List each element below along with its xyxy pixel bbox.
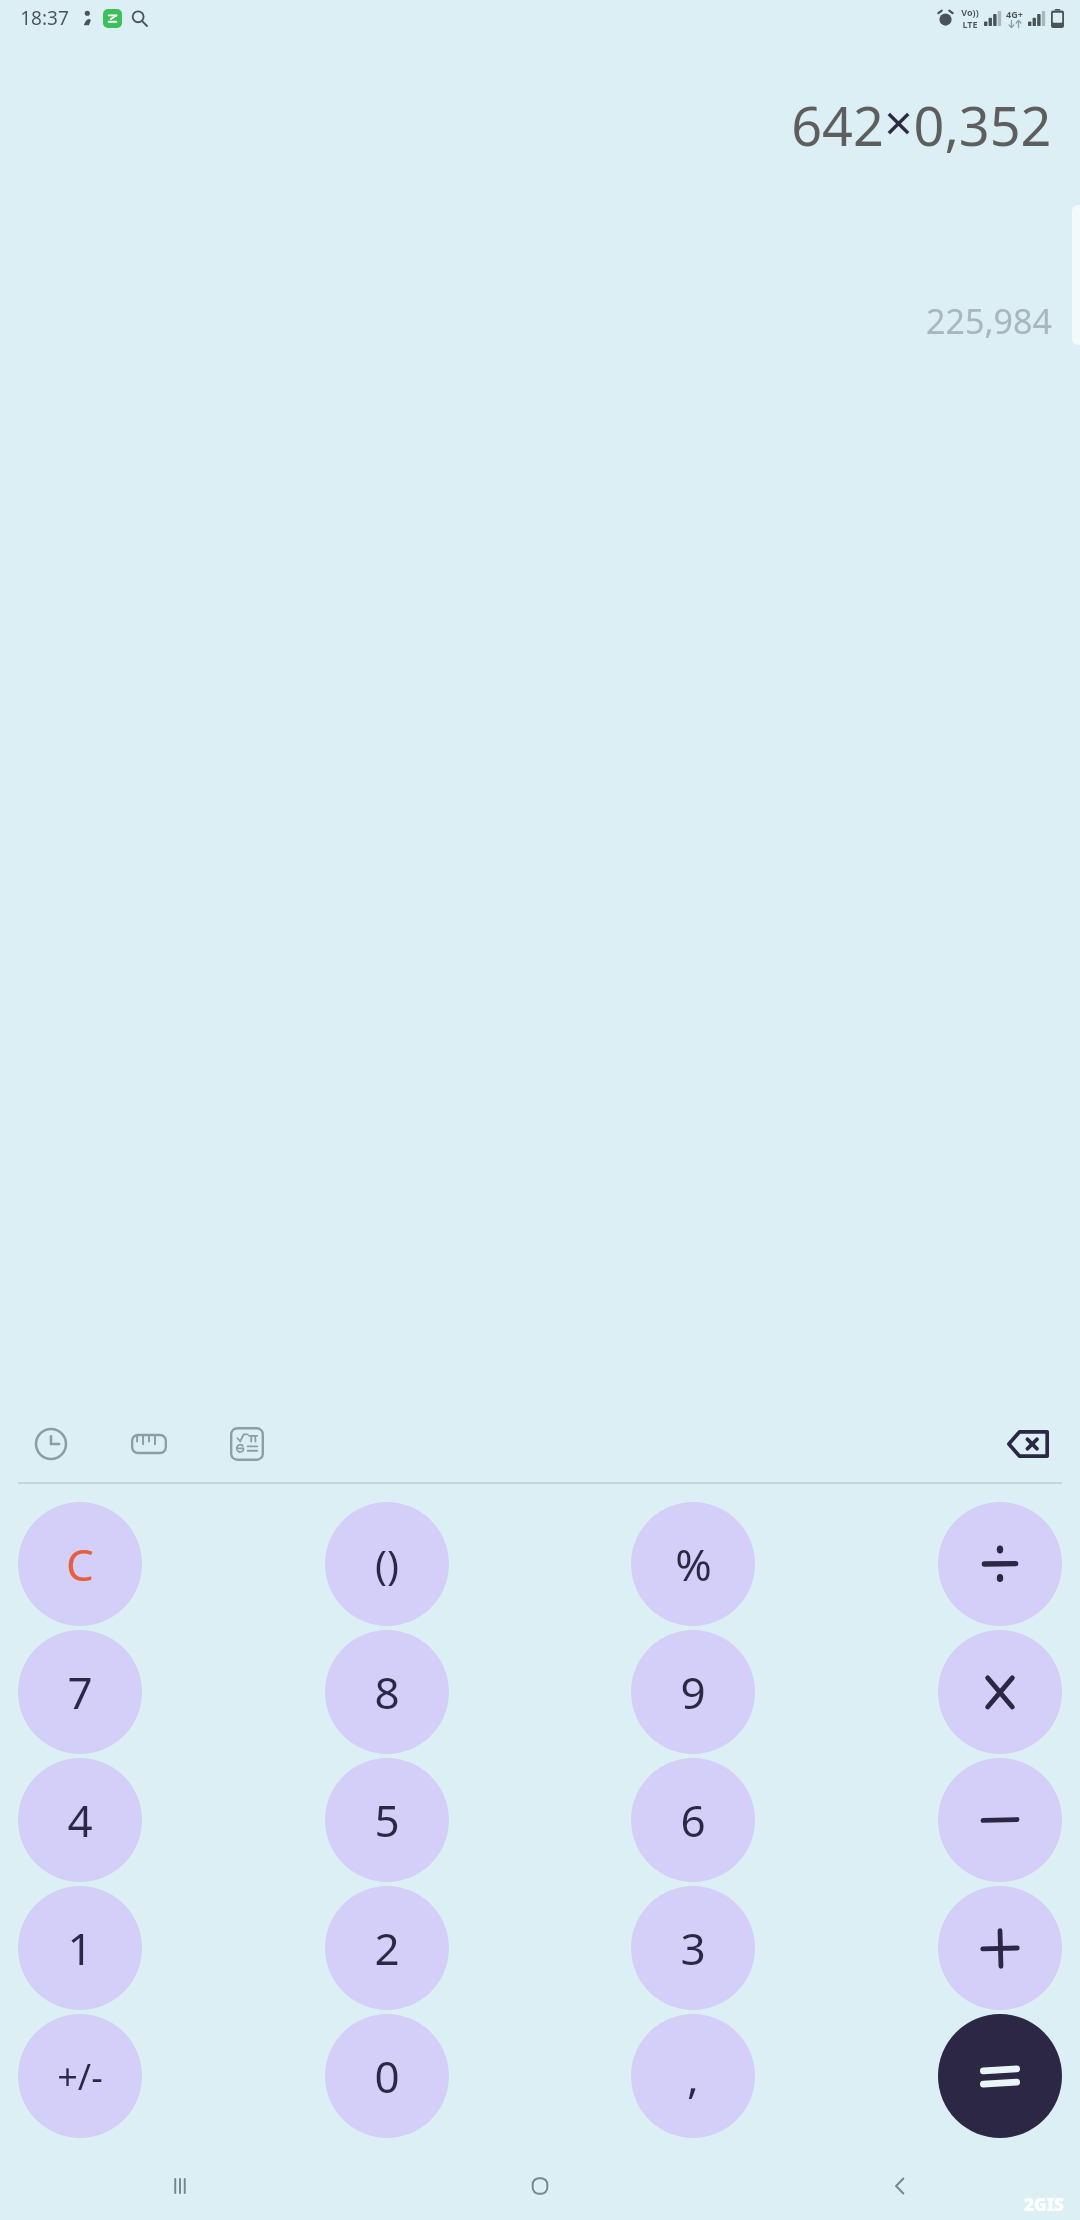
button[interactable]: Back: [720, 2152, 1080, 2220]
staticText: %: [675, 1534, 712, 1594]
staticText: 9: [680, 1662, 706, 1722]
staticText: 1: [67, 1918, 93, 1978]
staticText: 8: [374, 1662, 400, 1722]
button[interactable]: 1: [18, 1886, 142, 2010]
button[interactable]: +/-: [18, 2014, 142, 2138]
button[interactable]: C: [18, 1502, 142, 1626]
button[interactable]: %: [631, 1502, 755, 1626]
button[interactable]: [938, 1502, 1062, 1626]
staticText: 6: [680, 1790, 706, 1850]
button[interactable]: 8: [325, 1630, 449, 1754]
button[interactable]: 9: [631, 1630, 755, 1754]
staticText: (): [375, 1537, 399, 1591]
button[interactable]: 7: [18, 1630, 142, 1754]
button[interactable]: History: [24, 1417, 78, 1471]
button[interactable]: ,: [631, 2014, 755, 2138]
button[interactable]: (): [325, 1502, 449, 1626]
staticText: ,: [687, 2046, 699, 2106]
button[interactable]: Recents: [0, 2152, 360, 2220]
staticText: 0: [374, 2046, 400, 2106]
button[interactable]: [938, 1758, 1062, 1882]
staticText: 642: [791, 88, 884, 162]
button[interactable]: 0: [325, 2014, 449, 2138]
button[interactable]: 2: [325, 1886, 449, 2010]
button[interactable]: 6: [631, 1758, 755, 1882]
staticText: 0,352: [913, 88, 1052, 162]
staticText: 225,984: [926, 298, 1052, 344]
staticText: 4G+: [1006, 8, 1023, 20]
staticText: 4: [67, 1790, 93, 1850]
button[interactable]: Home: [360, 2152, 720, 2220]
staticText: C: [66, 1534, 94, 1594]
button[interactable]: Backspace: [1000, 1416, 1056, 1472]
staticText: +/-: [57, 2052, 103, 2101]
staticText: 2GIS: [1024, 2193, 1064, 2216]
button[interactable]: 5: [325, 1758, 449, 1882]
button[interactable]: [938, 2014, 1062, 2138]
staticText: 7: [67, 1662, 93, 1722]
staticText: 18:37: [20, 5, 69, 31]
staticText: 2: [374, 1918, 400, 1978]
staticText: Vo)): [961, 6, 979, 18]
button[interactable]: Unit converter: [122, 1417, 176, 1471]
staticText: ×: [884, 88, 913, 156]
staticText: 5: [374, 1790, 400, 1850]
button[interactable]: [938, 1630, 1062, 1754]
button[interactable]: Scientific: [220, 1417, 274, 1471]
button[interactable]: 4: [18, 1758, 142, 1882]
button[interactable]: [938, 1886, 1062, 2010]
staticText: LTE: [962, 18, 978, 30]
button[interactable]: 3: [631, 1886, 755, 2010]
staticText: 3: [680, 1918, 706, 1978]
